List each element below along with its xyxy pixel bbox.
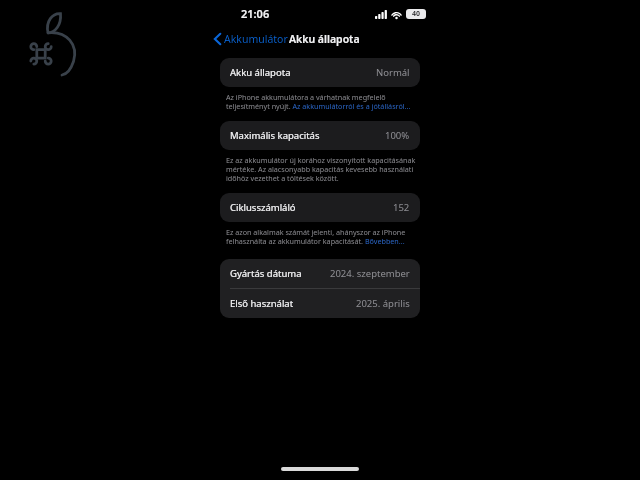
button[interactable]: Maximális kapacitás — [220, 121, 420, 150]
other: Apple logo — [27, 11, 77, 75]
staticText: 21:06 — [241, 6, 270, 21]
staticText: 100% — [385, 129, 410, 142]
staticText: Ez az akkumulátor új korához viszonyítot… — [226, 155, 416, 183]
staticText: Normál — [376, 66, 410, 79]
staticText: Maximális kapacitás — [230, 129, 320, 142]
staticText: Ciklusszámláló — [230, 201, 296, 214]
staticText: Akku állapota — [230, 66, 291, 79]
button[interactable]: Ciklusszámláló — [220, 193, 420, 222]
staticText: 2025. április — [356, 297, 410, 310]
button[interactable]: Gyártás dátuma — [220, 259, 420, 288]
staticText: 40 — [412, 9, 421, 19]
staticText: Akkumulátor — [224, 32, 288, 46]
button[interactable]: Akkumulátor — [212, 29, 290, 49]
staticText: Ez azon alkalmak számát jelenti, ahánysz… — [226, 227, 416, 246]
button[interactable]: Első használat — [220, 289, 420, 318]
button[interactable]: Akku állapota — [220, 58, 420, 87]
staticText: Az iPhone akkumulátora a várhatnak megfe… — [226, 92, 416, 111]
staticText: Gyártás dátuma — [230, 267, 302, 280]
staticText: Akku állapota — [289, 32, 360, 46]
staticText: Első használat — [230, 297, 294, 310]
staticText: 152 — [393, 201, 410, 214]
staticText: 2024. szeptember — [330, 267, 410, 280]
